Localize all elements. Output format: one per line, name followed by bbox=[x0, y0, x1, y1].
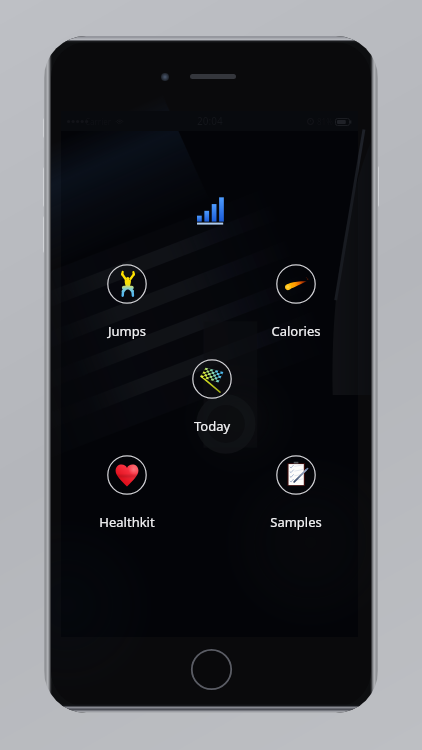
staticText: Jumps bbox=[87, 322, 167, 340]
button[interactable]: Home bbox=[190, 648, 233, 691]
button[interactable]: Jumps bbox=[87, 264, 167, 340]
staticText: Calories bbox=[256, 322, 336, 340]
button[interactable]: Today bbox=[172, 359, 252, 435]
staticText: 20:04 bbox=[197, 114, 223, 128]
staticText: Today bbox=[172, 417, 252, 435]
button[interactable]: Healthkit bbox=[87, 455, 167, 531]
button[interactable]: Statistics bbox=[197, 198, 224, 225]
staticText: Healthkit bbox=[87, 513, 167, 531]
button[interactable]: Samples bbox=[256, 455, 336, 531]
staticText: Samples bbox=[256, 513, 336, 531]
button[interactable]: Calories bbox=[256, 264, 336, 340]
